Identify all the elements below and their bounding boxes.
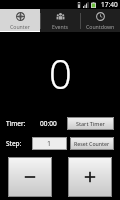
button[interactable]: Countdown bbox=[80, 9, 120, 32]
button[interactable]: 1 bbox=[32, 137, 67, 150]
staticText: 00:00 bbox=[40, 119, 57, 128]
staticText: Events bbox=[52, 23, 69, 30]
button[interactable]: Start Timer bbox=[67, 117, 114, 130]
staticText: 1 bbox=[47, 139, 52, 149]
staticText: Counter bbox=[10, 23, 30, 30]
staticText: Step: bbox=[6, 139, 32, 148]
staticText: Reset Counter bbox=[74, 140, 110, 147]
button[interactable]: Increment bbox=[68, 157, 112, 197]
staticText: Countdown bbox=[86, 23, 115, 30]
staticText: Timer: bbox=[6, 119, 32, 128]
button[interactable]: Reset Counter bbox=[70, 137, 114, 150]
staticText: 17:40 bbox=[101, 0, 118, 9]
button[interactable]: Decrement bbox=[8, 157, 52, 197]
staticText: 0 bbox=[49, 46, 72, 100]
staticText: Start Timer bbox=[76, 120, 105, 127]
button[interactable]: Events bbox=[40, 9, 80, 32]
button[interactable]: Counter bbox=[0, 9, 40, 32]
